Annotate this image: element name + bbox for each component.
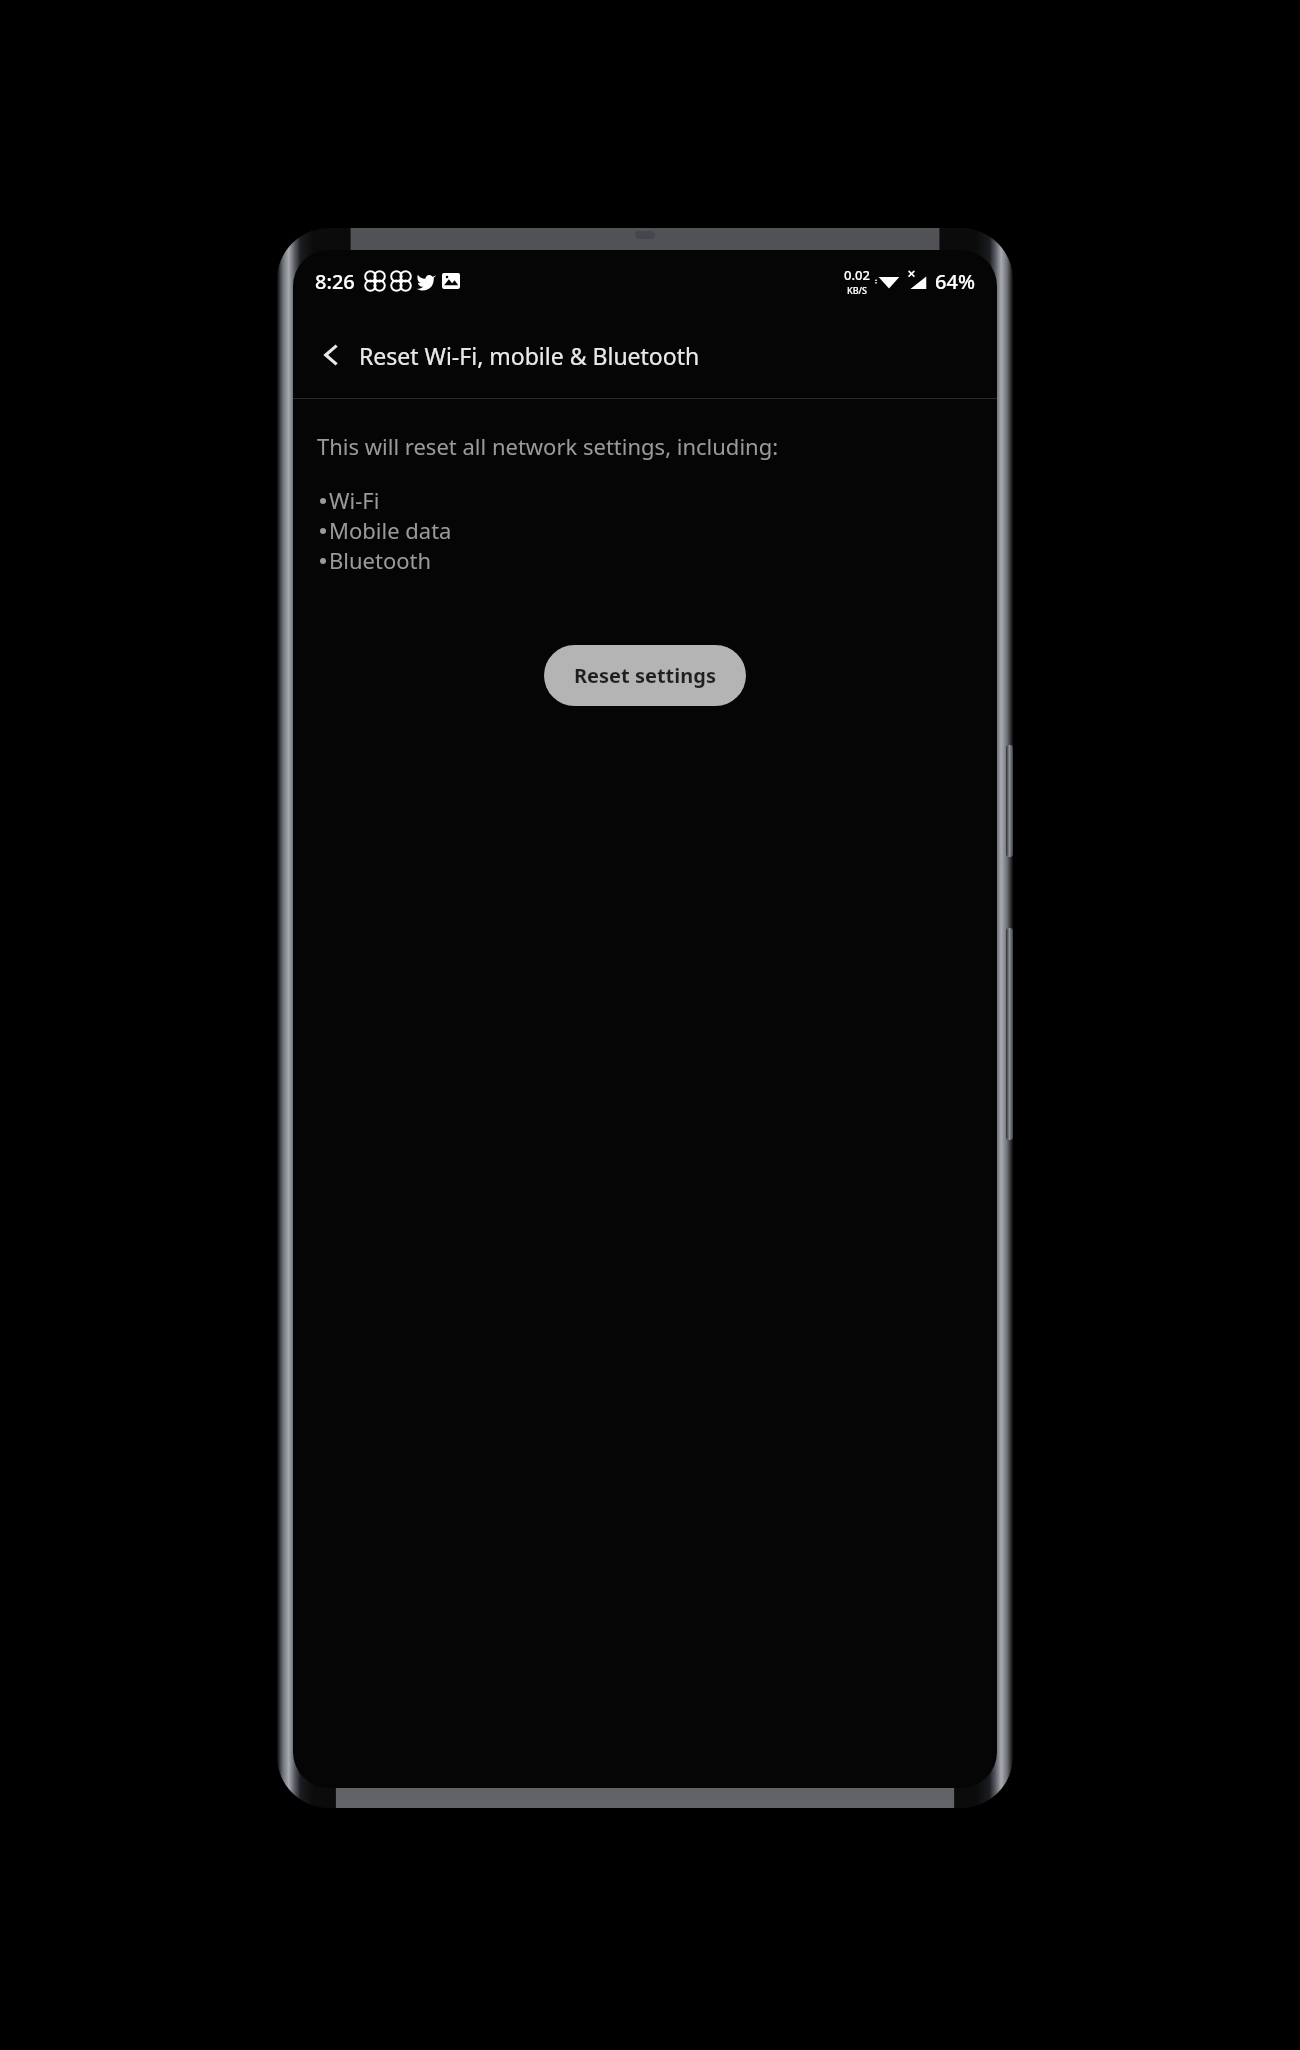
staticText: Mobile data — [329, 515, 452, 545]
staticText: 8:26 — [315, 268, 355, 295]
staticText: Reset Wi-Fi, mobile & Bluetooth — [359, 340, 700, 371]
button[interactable]: Reset settings — [544, 645, 746, 706]
staticText: 64% — [935, 268, 975, 295]
staticText: KB/S — [847, 284, 867, 296]
staticText: 0.02 — [844, 266, 870, 284]
staticText: Bluetooth — [329, 545, 432, 575]
button[interactable]: Back — [293, 328, 347, 382]
staticText: Reset settings — [574, 662, 716, 689]
staticText: This will reset all network settings, in… — [317, 431, 779, 461]
staticText: Wi-Fi — [329, 485, 380, 515]
